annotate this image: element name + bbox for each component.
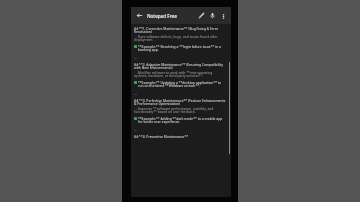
staticText: --- (134, 127, 138, 131)
staticText: --- (134, 91, 138, 95)
button[interactable]: ## **1. Corrective Maintenance** (Bug Fi… (134, 26, 226, 197)
staticText: **Example:** Adding **dark mode** to a m… (138, 116, 226, 124)
staticText: ## **4. Preventive Maintenance** (134, 134, 226, 138)
staticText: **Example:** Resolving a **login failure… (138, 44, 226, 52)
staticText: - Improves **software performance, usabi… (134, 106, 226, 114)
staticText: ## **2. Adaptive Maintenance** (Ensuring… (134, 62, 226, 70)
staticText: - Modifies software to work with **new o… (134, 70, 226, 78)
staticText: ## **3. Perfective Maintenance** (Featur… (134, 98, 226, 106)
staticText: ## **1. Corrective Maintenance** (Bug Fi… (134, 26, 226, 34)
button[interactable]: More options (218, 11, 228, 21)
staticText: Notepad Free (147, 13, 196, 19)
staticText: - Fixes software defects, bugs, and issu… (134, 34, 226, 42)
button[interactable]: Voice input (207, 10, 218, 21)
button[interactable]: Edit (196, 10, 207, 21)
staticText: --- (134, 55, 138, 59)
button[interactable]: Back (134, 10, 145, 21)
staticText: **Example:** Updating a **desktop applic… (138, 80, 226, 88)
